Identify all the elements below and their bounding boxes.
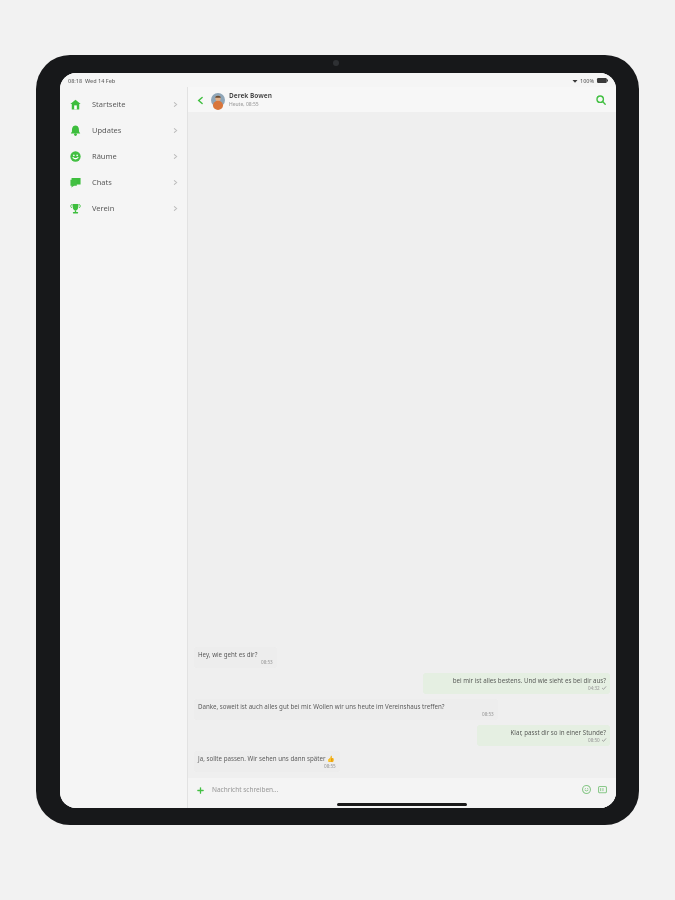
button[interactable]: Camera (596, 783, 609, 796)
button[interactable]: Räume (60, 143, 187, 169)
staticText: 08:53 (261, 659, 273, 665)
button[interactable]: Back (193, 93, 207, 107)
button[interactable]: Klar, passt dir so in einer Stunde? (477, 725, 610, 746)
staticText: Derek Bowen (229, 91, 272, 100)
staticText: Verein (92, 203, 115, 213)
button[interactable]: Verein (60, 195, 187, 221)
staticText: Chats (92, 177, 112, 187)
staticText: 08:55 (324, 763, 336, 769)
staticText: Räume (92, 151, 117, 161)
staticText: 04:32 (588, 685, 600, 691)
button[interactable]: bei mir ist alles bestens. Und wie sieht… (423, 673, 610, 694)
button[interactable]: Danke, soweit ist auch alles gut bei mir… (194, 699, 498, 720)
staticText: Ja, sollte passen. Wir sehen uns dann sp… (198, 754, 336, 762)
button[interactable]: Hey, wie geht es dir? (194, 647, 277, 668)
staticText: 08:53 (482, 711, 494, 717)
button[interactable]: Updates (60, 117, 187, 143)
button[interactable]: Startseite (60, 91, 187, 117)
staticText: 08:18 Wed 14 Feb (68, 77, 116, 84)
staticText: Startseite (92, 99, 126, 109)
button[interactable]: Nachricht schreiben... (212, 785, 580, 794)
staticText: 100% (580, 77, 595, 84)
button[interactable]: Emoji (580, 783, 593, 796)
staticText: Updates (92, 125, 122, 135)
staticText: Klar, passt dir so in einer Stunde? (481, 728, 606, 736)
staticText: bei mir ist alles bestens. Und wie sieht… (427, 676, 606, 684)
button[interactable]: Ja, sollte passen. Wir sehen uns dann sp… (194, 751, 340, 772)
button[interactable]: Search (593, 92, 609, 108)
staticText: 08:50 (588, 737, 600, 743)
staticText: Hey, wie geht es dir? (198, 650, 273, 658)
button[interactable]: Chats (60, 169, 187, 195)
staticText: Danke, soweit ist auch alles gut bei mir… (198, 702, 494, 710)
button[interactable]: Derek Bowen (211, 91, 593, 108)
button[interactable]: Add attachment (194, 784, 206, 796)
staticText: Heute, 08:55 (229, 101, 259, 108)
